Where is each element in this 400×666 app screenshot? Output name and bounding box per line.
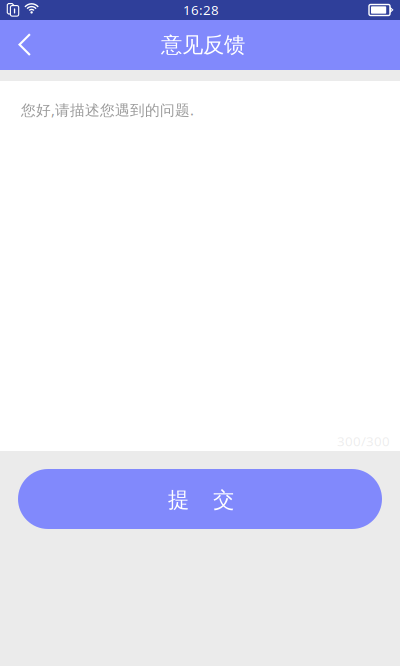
staticText: 意见反馈 xyxy=(161,32,245,58)
button[interactable]: 提 交 xyxy=(18,469,382,529)
staticText: 16:28 xyxy=(183,1,219,19)
button[interactable]: 您好,请描述您遇到的问题. xyxy=(0,81,400,451)
staticText: 提 交 xyxy=(168,487,234,513)
staticText: 您好,请描述您遇到的问题. xyxy=(21,100,194,119)
staticText: 300/300 xyxy=(337,432,390,450)
button[interactable]: Back xyxy=(0,20,48,70)
